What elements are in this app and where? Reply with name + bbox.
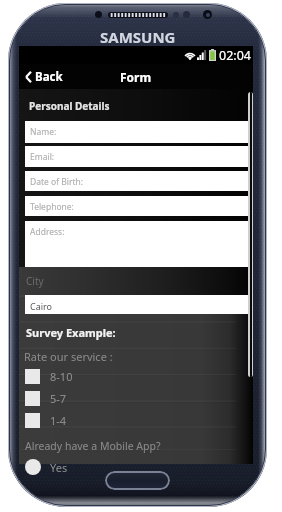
staticText: Email: <box>30 151 55 163</box>
staticText: 02:04 <box>219 47 251 64</box>
staticText: Survey Example: <box>26 325 116 340</box>
staticText: Cairo <box>30 300 53 312</box>
staticText: Personal Details <box>29 99 110 113</box>
staticText: Form <box>120 69 152 85</box>
staticText: Already have a Mobile App? <box>25 439 161 453</box>
staticText: Name: <box>30 126 57 138</box>
staticText: 5-7 <box>50 391 67 406</box>
button[interactable]: Address: <box>25 221 250 267</box>
staticText: Rate our service : <box>24 349 113 364</box>
staticText: Back <box>35 69 63 85</box>
staticText: Address: <box>30 226 65 238</box>
staticText: 8-10 <box>50 369 73 384</box>
staticText: SAMSUNG <box>100 27 176 47</box>
button[interactable]: Date of Birth: <box>25 171 250 191</box>
button[interactable]: Name: <box>25 121 250 143</box>
staticText: Yes <box>50 460 68 475</box>
button[interactable]: Back <box>19 64 73 89</box>
button[interactable]: 8-10 <box>19 365 253 387</box>
staticText: 1-4 <box>50 413 67 428</box>
staticText: City <box>26 274 44 288</box>
staticText: Date of Birth: <box>30 176 84 188</box>
button[interactable]: Yes <box>19 457 253 477</box>
button[interactable]: 1-4 <box>19 409 253 431</box>
button[interactable]: 5-7 <box>19 387 253 409</box>
button[interactable]: Email: <box>25 146 250 167</box>
button[interactable]: Home <box>105 471 170 490</box>
button[interactable]: Cairo <box>25 295 250 314</box>
button[interactable]: Telephone: <box>25 196 250 216</box>
staticText: Telephone: <box>30 201 74 213</box>
